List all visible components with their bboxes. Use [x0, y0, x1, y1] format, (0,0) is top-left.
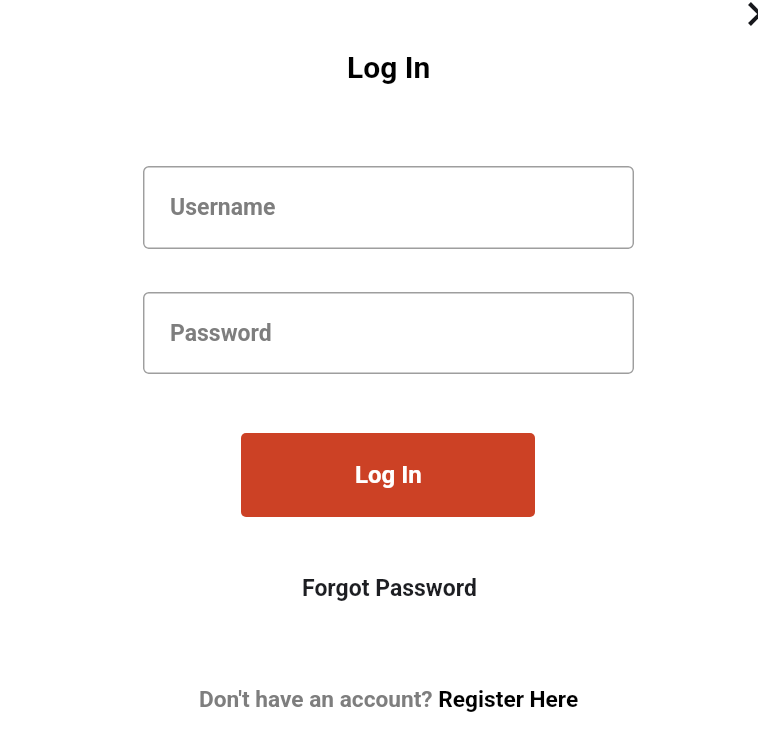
button[interactable]: Don't have an account? Register Here: [188, 680, 590, 718]
staticText: Forgot Password: [302, 575, 477, 602]
staticText: Log In: [355, 461, 422, 489]
button[interactable]: Next: [716, 0, 758, 38]
button[interactable]: Forgot Password: [291, 568, 487, 608]
staticText: Username: [170, 194, 276, 221]
button[interactable]: Password: [143, 292, 634, 374]
staticText: Log In: [347, 50, 431, 85]
button[interactable]: Log In: [241, 433, 535, 517]
button[interactable]: Username: [143, 166, 634, 249]
staticText: Don't have an account? Register Here: [199, 686, 579, 713]
staticText: Password: [170, 320, 272, 347]
